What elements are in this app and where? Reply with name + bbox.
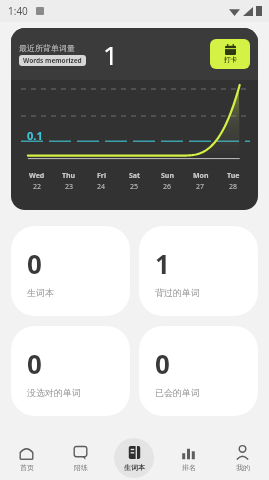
- staticText: 1:40: [8, 4, 28, 18]
- staticText: 0.1: [27, 128, 43, 143]
- button[interactable]: 打卡: [210, 39, 250, 69]
- staticText: 1: [155, 246, 170, 281]
- button[interactable]: 0: [11, 326, 130, 416]
- staticText: 23: [65, 182, 74, 192]
- staticText: 22: [33, 182, 42, 192]
- staticText: Tue: [227, 171, 240, 181]
- button[interactable]: 最近所背单词量: [11, 28, 258, 210]
- button[interactable]: 我的: [215, 436, 269, 480]
- staticText: 没选对的单词: [27, 387, 81, 398]
- staticText: 打卡: [224, 56, 237, 64]
- staticText: 排名: [182, 463, 196, 472]
- staticText: 陪练: [74, 463, 88, 472]
- staticText: 26: [163, 182, 172, 192]
- staticText: Mon: [193, 171, 209, 181]
- staticText: 0: [27, 346, 42, 381]
- button[interactable]: 1: [139, 226, 258, 316]
- staticText: Sun: [161, 171, 174, 181]
- staticText: 0: [27, 246, 42, 281]
- staticText: 27: [196, 182, 205, 192]
- staticText: Sat: [129, 171, 141, 181]
- staticText: Words memorized: [23, 56, 82, 65]
- staticText: 已会的单词: [155, 387, 200, 398]
- button[interactable]: 陪练: [53, 436, 107, 480]
- staticText: 最近所背单词量: [19, 43, 75, 53]
- staticText: 生词本: [124, 463, 145, 472]
- staticText: 我的: [236, 463, 250, 472]
- staticText: 28: [229, 182, 238, 192]
- button[interactable]: 排名: [161, 436, 215, 480]
- staticText: Thu: [62, 171, 76, 181]
- staticText: 背过的单词: [155, 287, 200, 298]
- button[interactable]: 生词本: [107, 436, 161, 480]
- button[interactable]: 首页: [0, 436, 53, 480]
- staticText: Wed: [29, 171, 45, 181]
- staticText: 24: [97, 182, 106, 192]
- button[interactable]: 0: [139, 326, 258, 416]
- staticText: 1: [103, 37, 118, 72]
- staticText: Fri: [97, 171, 107, 181]
- staticText: 首页: [20, 463, 34, 472]
- staticText: 生词本: [27, 287, 54, 298]
- staticText: 25: [130, 182, 139, 192]
- staticText: 0: [155, 346, 170, 381]
- button[interactable]: 0: [11, 226, 130, 316]
